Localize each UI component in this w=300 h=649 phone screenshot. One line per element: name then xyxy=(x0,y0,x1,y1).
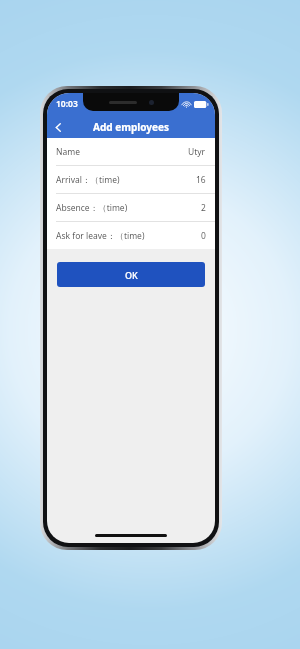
staticText: Absence：（time) xyxy=(56,202,128,214)
staticText: Name xyxy=(56,146,80,158)
button[interactable]: Absence：（time) xyxy=(47,194,215,221)
button[interactable]: Name xyxy=(47,138,215,165)
staticText: Ask for leave：（time) xyxy=(56,230,145,242)
button[interactable]: Back xyxy=(47,116,69,138)
staticText: OK xyxy=(125,269,138,281)
staticText: Arrival：（time) xyxy=(56,174,120,186)
button[interactable]: Ask for leave：（time) xyxy=(47,222,215,249)
staticText: 2 xyxy=(201,202,206,214)
staticText: 0 xyxy=(201,230,206,242)
staticText: 10:03 xyxy=(56,98,78,110)
button[interactable]: OK xyxy=(57,262,205,287)
staticText: Utyr xyxy=(188,146,206,158)
staticText: Add employees xyxy=(93,120,169,134)
staticText: 16 xyxy=(196,174,206,186)
button[interactable]: Arrival：（time) xyxy=(47,166,215,193)
